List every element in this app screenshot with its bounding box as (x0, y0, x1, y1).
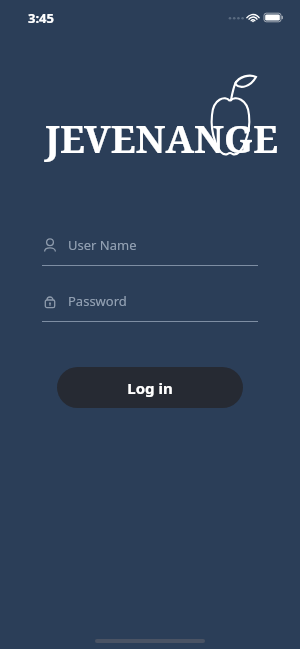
staticText: 3:45 (28, 9, 54, 27)
staticText: JEVENANGE (45, 112, 279, 164)
button[interactable]: Password (42, 288, 258, 322)
button[interactable]: Log in (57, 367, 243, 408)
button[interactable]: User Name (42, 232, 258, 266)
staticText: Log in (127, 378, 173, 398)
staticText: User Name (68, 236, 137, 254)
staticText: Password (68, 292, 127, 310)
